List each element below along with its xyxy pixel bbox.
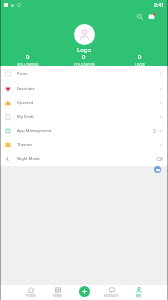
staticText: HOME	[26, 294, 36, 298]
staticText: Upvoted	[17, 100, 34, 106]
staticText: App Management	[17, 128, 52, 134]
button[interactable]: App Management	[0, 124, 168, 138]
staticText: NEWS	[53, 294, 62, 298]
staticText: Night Mode	[17, 156, 40, 162]
staticText: 3	[153, 128, 156, 134]
staticText: LIKES	[135, 62, 145, 67]
button[interactable]: Search	[134, 11, 145, 22]
staticText: FOLLOWERS	[74, 62, 95, 67]
staticText: 0	[26, 53, 30, 61]
button[interactable]: Messages	[146, 11, 157, 22]
staticText: My Draft	[17, 114, 34, 120]
staticText: Themes	[17, 142, 33, 148]
button[interactable]: Themes	[0, 138, 168, 152]
staticText: FOLLOWING	[17, 62, 39, 67]
staticText: 0	[82, 53, 86, 61]
button[interactable]: ME	[125, 285, 152, 300]
staticText: Posts	[17, 71, 28, 77]
staticText: 0	[138, 53, 142, 61]
button[interactable]: Camera	[154, 166, 161, 173]
button[interactable]: 0	[56, 53, 112, 67]
button[interactable]: 0	[0, 53, 56, 67]
staticText: Logo	[77, 46, 92, 54]
button[interactable]: Night Mode	[0, 152, 168, 166]
button[interactable]: HOME	[17, 285, 44, 300]
button[interactable]: 0	[112, 53, 168, 67]
button[interactable]: MESSAGE	[98, 285, 125, 300]
button[interactable]: Favorites	[0, 81, 168, 96]
staticText: 9:41	[154, 2, 164, 9]
staticText: ME	[136, 294, 141, 298]
button[interactable]: Add	[79, 286, 90, 297]
button[interactable]: My Draft	[0, 110, 168, 124]
button[interactable]: Upvoted	[0, 96, 168, 110]
button[interactable]: Posts	[0, 66, 168, 81]
button[interactable]: NEWS	[44, 285, 71, 300]
button[interactable]: Profile picture	[74, 24, 95, 45]
staticText: Favorites	[17, 86, 35, 92]
staticText: MESSAGE	[104, 294, 119, 298]
